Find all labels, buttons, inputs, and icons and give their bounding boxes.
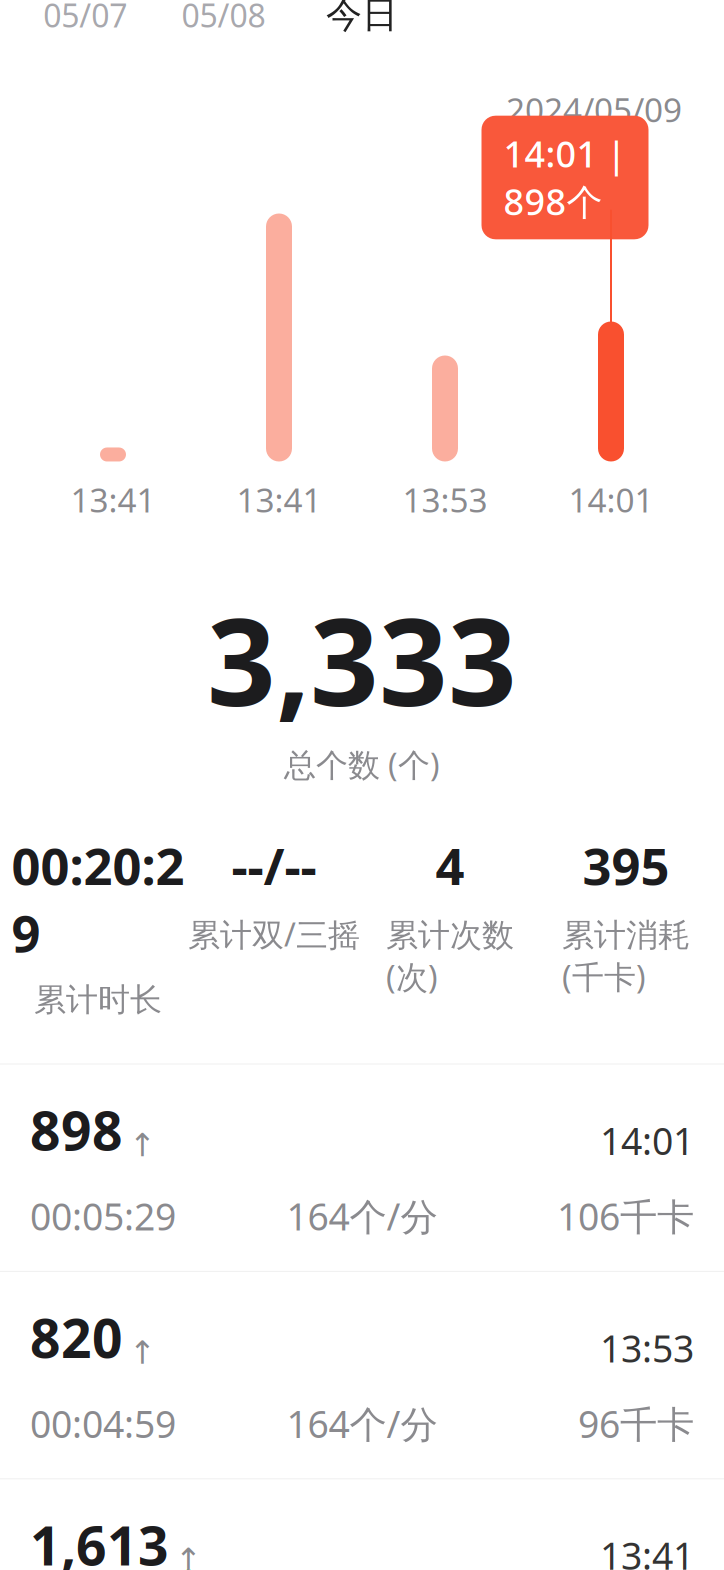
staticText: 13:41 <box>70 477 155 522</box>
staticText: 106千卡 <box>557 1191 694 1241</box>
staticText: 13:53 <box>402 477 487 522</box>
button[interactable]: 820 <box>0 1272 724 1478</box>
button[interactable]: 05/08 <box>154 0 293 44</box>
staticText: 总个数 (个) <box>284 743 440 786</box>
staticText: --/-- <box>231 832 316 899</box>
staticText: 2024/05/09 <box>506 87 682 131</box>
staticText: 00:20:29 <box>11 832 184 966</box>
button[interactable]: 898 <box>0 1064 724 1271</box>
staticText: 05/08 <box>182 0 266 36</box>
staticText: 3,333 <box>207 580 517 739</box>
button[interactable]: 1,613 <box>0 1479 724 1570</box>
staticText: 1,613 <box>30 1509 169 1570</box>
staticText: 164个/分 <box>286 1191 437 1241</box>
staticText: 今日 <box>326 0 398 37</box>
staticText: 820 <box>30 1302 123 1373</box>
staticText: 00:05:29 <box>30 1191 176 1241</box>
staticText: 164个/分 <box>286 1399 437 1448</box>
staticText: 898 <box>30 1094 123 1165</box>
button[interactable]: 05/07 <box>16 0 154 44</box>
staticText: 累计双/三摇 <box>188 913 360 955</box>
staticText: 00:04:59 <box>30 1399 176 1448</box>
staticText: ↑ <box>129 1127 156 1163</box>
staticText: 13:41 <box>236 477 321 522</box>
staticText: 395 <box>582 832 669 899</box>
staticText: 累计消耗 (千卡) <box>562 913 690 998</box>
staticText: 13:53 <box>600 1323 694 1373</box>
staticText: ↑ <box>175 1542 202 1570</box>
staticText: 05/07 <box>43 0 127 36</box>
staticText: ↑ <box>129 1334 156 1371</box>
staticText: 累计次数 (次) <box>386 913 514 998</box>
staticText: 14:01 <box>600 1116 694 1165</box>
staticText: 14:01 | 898个 <box>503 130 626 225</box>
staticText: 4 <box>435 832 464 899</box>
staticText: 累计时长 <box>34 980 162 1019</box>
staticText: 14:01 <box>568 477 653 522</box>
button[interactable]: 今日 <box>293 0 431 45</box>
staticText: 13:41 <box>600 1530 694 1570</box>
staticText: 96千卡 <box>578 1399 694 1448</box>
